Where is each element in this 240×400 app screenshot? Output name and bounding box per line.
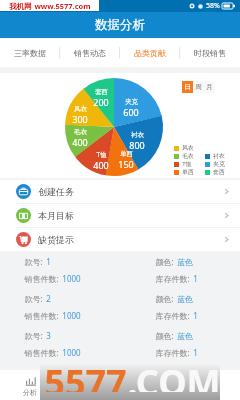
staticText: 毛衣	[74, 128, 87, 136]
button[interactable]: 月	[204, 81, 215, 93]
staticText: 400	[72, 136, 88, 148]
button[interactable]: 我的	[180, 370, 240, 400]
staticText: 款号:	[24, 293, 43, 304]
staticText: .COM	[127, 358, 221, 392]
staticText: 缺货提示	[38, 234, 74, 245]
staticText: 1	[193, 347, 198, 358]
staticText: T恤	[182, 160, 192, 168]
staticText: 5577	[44, 358, 127, 392]
staticText: 销售件数:	[24, 273, 59, 284]
staticText: 套西	[213, 168, 225, 176]
staticText: 蓝色	[177, 257, 193, 267]
staticText: 时段销售	[194, 48, 226, 58]
staticText: 销售件数:	[24, 310, 59, 321]
button[interactable]: 周	[193, 81, 204, 93]
staticText: www.5577.com	[34, 1, 91, 11]
staticText: 夹克	[125, 98, 138, 106]
staticText: 200	[93, 96, 109, 108]
staticText: 三率数据	[14, 48, 46, 58]
staticText: 套西	[95, 88, 108, 96]
staticText: 颜色:	[155, 293, 174, 304]
staticText: 数据分析	[95, 17, 145, 33]
staticText: 颜色:	[155, 330, 174, 341]
staticText: 单西	[120, 150, 133, 158]
staticText: 夹克	[213, 160, 225, 168]
staticText: 1000	[62, 347, 81, 358]
staticText: 报表	[143, 388, 157, 397]
staticText: 3	[46, 330, 51, 341]
staticText: 衬衣	[131, 131, 144, 139]
staticText: 58%	[206, 1, 220, 11]
staticText: 款号:	[24, 256, 43, 267]
staticText: 月	[206, 83, 213, 91]
staticText: 1	[193, 273, 198, 284]
button[interactable]: 三率数据	[0, 38, 60, 67]
staticText: 800	[129, 139, 145, 151]
staticText: 本月目标	[38, 210, 74, 221]
button[interactable]: 缺货提示	[0, 228, 240, 251]
staticText: 风衣	[74, 105, 87, 113]
staticText: 创建任务	[38, 186, 74, 197]
button[interactable]: 主页	[60, 370, 120, 400]
button[interactable]: 本月目标	[0, 204, 240, 227]
button[interactable]: 日	[182, 81, 193, 93]
button[interactable]: 销售动态	[60, 38, 120, 67]
staticText: 风衣	[182, 144, 194, 152]
staticText: 主页	[83, 388, 97, 397]
staticText: 我机网	[9, 2, 32, 11]
staticText: 我的	[203, 388, 217, 397]
staticText: 品类贡献	[134, 48, 166, 58]
staticText: 蓝色	[177, 331, 193, 341]
staticText: 库存件数:	[155, 347, 190, 358]
staticText: 销售动态	[74, 48, 106, 58]
button[interactable]: 分析	[0, 370, 60, 400]
staticText: 款号:	[24, 330, 43, 341]
staticText: 销售件数:	[24, 347, 59, 358]
button[interactable]: 时段销售	[180, 38, 240, 67]
staticText: 日	[184, 83, 191, 91]
staticText: 1000	[62, 273, 81, 284]
staticText: 库存件数:	[155, 310, 190, 321]
staticText: 600	[123, 106, 139, 118]
staticText: 300	[72, 113, 88, 125]
staticText: 单西	[182, 168, 194, 176]
staticText: 1	[46, 256, 51, 267]
staticText: 颜色:	[155, 256, 174, 267]
staticText: 1000	[62, 310, 81, 321]
staticText: 1	[193, 310, 198, 321]
staticText: T恤	[96, 150, 107, 159]
staticText: 400	[93, 159, 109, 171]
staticText: 2	[46, 293, 51, 304]
staticText: 分析	[23, 388, 37, 397]
staticText: 毛衣	[182, 152, 194, 160]
button[interactable]: 创建任务	[0, 180, 240, 203]
staticText: 蓝色	[177, 294, 193, 304]
staticText: 库存件数:	[155, 273, 190, 284]
staticText: 150	[118, 158, 134, 170]
button[interactable]: 品类贡献	[120, 38, 180, 67]
staticText: 周	[195, 83, 202, 91]
button[interactable]: 报表	[120, 370, 180, 400]
staticText: 衬衣	[213, 152, 225, 160]
